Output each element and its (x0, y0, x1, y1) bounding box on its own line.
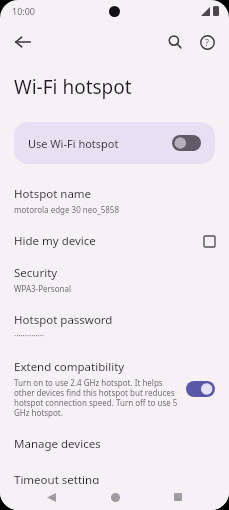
staticText: motorola edge 30 neo_5858 (14, 204, 119, 215)
button[interactable]: Hotspot password (0, 310, 229, 343)
staticText: Security (14, 265, 58, 281)
staticText: Turn on to use 2.4 GHz hotspot. It helps… (14, 377, 178, 418)
button[interactable]: Help (191, 26, 223, 58)
staticText: Hotspot name (14, 186, 92, 202)
button[interactable]: Search (159, 26, 191, 58)
staticText: WPA3-Personal (14, 283, 71, 294)
staticText: Wi-Fi hotspot (14, 74, 132, 100)
button[interactable]: Home (102, 484, 128, 510)
button[interactable]: Hotspot name (0, 184, 229, 217)
button[interactable]: Timeout setting (0, 470, 229, 510)
button[interactable]: Security (0, 263, 229, 296)
button[interactable]: Back (6, 25, 40, 59)
button[interactable]: Use Wi-Fi hotspot (14, 122, 215, 164)
staticText: Extend compatibility (14, 359, 125, 375)
staticText: 10:00 (12, 5, 36, 17)
staticText: Specify when to turn off the inactive Mo… (14, 490, 215, 508)
staticText: Use Wi-Fi hotspot (28, 136, 172, 151)
button[interactable]: Hide my device (0, 231, 229, 251)
button[interactable]: Recent apps (165, 484, 191, 510)
staticText: Timeout setting (14, 472, 100, 488)
staticText: ·············· (14, 330, 45, 341)
button[interactable]: Manage devices (0, 434, 229, 454)
button[interactable]: Back (38, 484, 64, 510)
button[interactable]: Extend compatibility (0, 357, 229, 420)
staticText: Manage devices (14, 436, 101, 452)
staticText: ? (205, 36, 209, 48)
staticText: Hide my device (14, 233, 204, 249)
staticText: Hotspot password (14, 312, 113, 328)
